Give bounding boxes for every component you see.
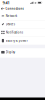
staticText: 9:41: [2, 0, 9, 5]
staticText: Notifications: [6, 31, 23, 34]
staticText: Display: [6, 50, 15, 54]
button[interactable]: Notifications: [0, 28, 45, 36]
staticText: Battery & power: [6, 39, 28, 42]
staticText: Devices: [6, 22, 15, 26]
button[interactable]: Back: [1, 5, 5, 12]
button[interactable]: Network: [0, 12, 45, 20]
staticText: Connections: [5, 7, 23, 10]
staticText: Network: [6, 14, 17, 18]
button[interactable]: Display: [0, 48, 45, 56]
button[interactable]: Battery & power: [0, 37, 45, 45]
button[interactable]: Devices: [0, 20, 45, 28]
